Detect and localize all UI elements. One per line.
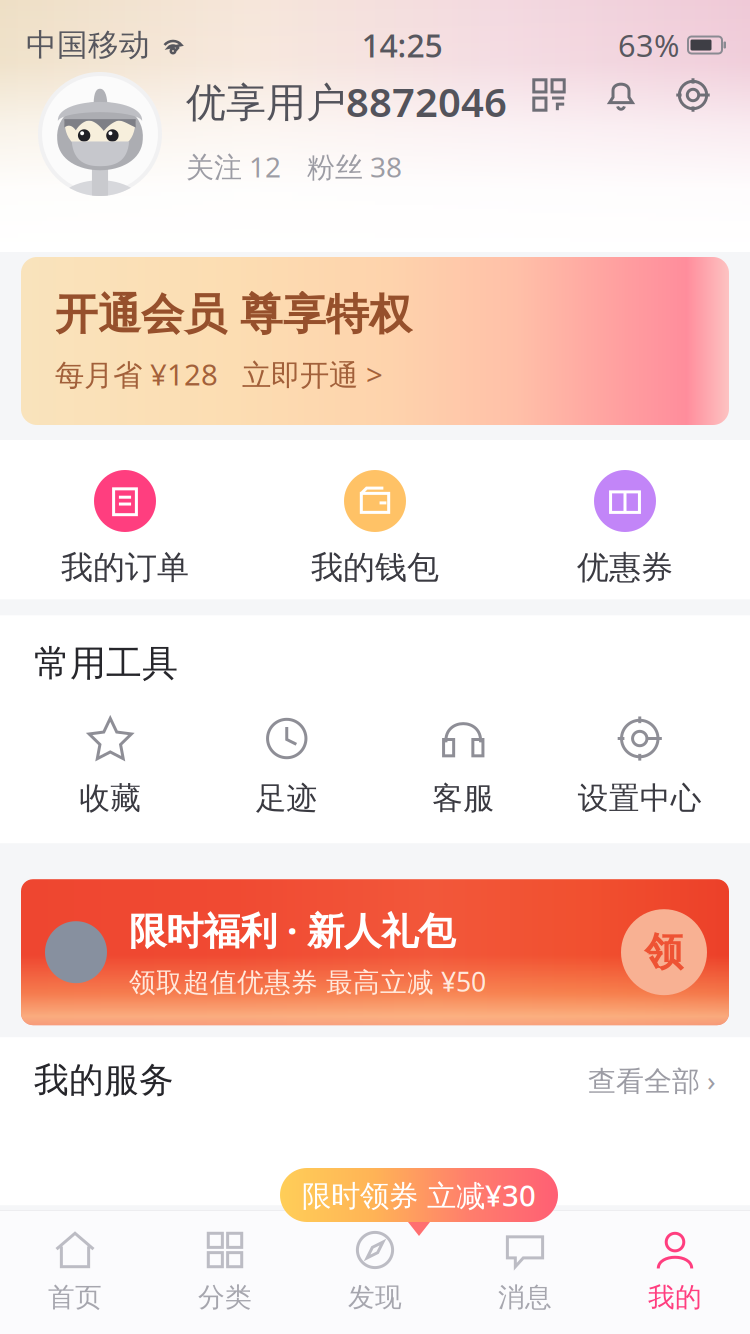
staticText: 查看全部 › bbox=[588, 1062, 716, 1099]
button[interactable]: 收藏 bbox=[22, 695, 198, 823]
button[interactable]: 消息通知 bbox=[602, 76, 640, 114]
staticText: 领 bbox=[644, 928, 683, 976]
staticText: 14:25 bbox=[361, 24, 442, 66]
button[interactable]: 消息 bbox=[450, 1227, 600, 1314]
staticText: 中国移动 bbox=[26, 26, 150, 64]
staticText: 每月省 ¥128 立即开通 > bbox=[55, 355, 383, 394]
button[interactable]: 我的钱包 bbox=[250, 440, 500, 599]
staticText: 客服 bbox=[432, 779, 494, 817]
button[interactable]: 分类 bbox=[150, 1227, 300, 1314]
staticText: 我的 bbox=[648, 1281, 702, 1314]
button[interactable]: 首页 bbox=[0, 1227, 150, 1314]
button[interactable]: 限时福利 · 新人礼包 bbox=[0, 843, 750, 1025]
button[interactable]: 限时领券 立减¥30 bbox=[280, 1168, 558, 1236]
staticText: 消息 bbox=[498, 1281, 552, 1314]
staticText: 常用工具 bbox=[34, 641, 178, 685]
staticText: 优享用户8872046 bbox=[186, 75, 507, 128]
button[interactable]: 头像 bbox=[38, 72, 162, 196]
staticText: 我的订单 bbox=[61, 548, 189, 587]
staticText: 我的服务 bbox=[34, 1059, 174, 1101]
button[interactable]: 足迹 bbox=[198, 695, 375, 823]
staticText: 设置中心 bbox=[578, 779, 702, 817]
button[interactable]: 我的服务 bbox=[0, 1037, 750, 1123]
button[interactable]: 扫一扫 bbox=[530, 76, 568, 114]
staticText: 粉丝 38 bbox=[307, 148, 402, 185]
staticText: 收藏 bbox=[79, 779, 141, 817]
staticText: 领取超值优惠券 最高立减 ¥50 bbox=[129, 964, 486, 999]
button[interactable]: 设置 bbox=[674, 76, 712, 114]
button[interactable]: 我的 bbox=[600, 1227, 750, 1314]
button[interactable]: 发现 bbox=[300, 1227, 450, 1314]
button[interactable]: 开通会员 尊享特权 bbox=[0, 252, 750, 425]
staticText: 足迹 bbox=[256, 779, 318, 817]
staticText: 63% bbox=[618, 25, 679, 65]
staticText: 分类 bbox=[198, 1281, 252, 1314]
staticText: 发现 bbox=[348, 1281, 402, 1314]
staticText: 优惠券 bbox=[577, 548, 673, 587]
staticText: 关注 12 bbox=[186, 148, 281, 185]
staticText: 限时领券 立减¥30 bbox=[302, 1175, 536, 1214]
staticText: 限时福利 · 新人礼包 bbox=[129, 905, 455, 955]
staticText: 我的钱包 bbox=[311, 548, 439, 587]
button[interactable]: 设置中心 bbox=[551, 695, 728, 823]
staticText: 开通会员 尊享特权 bbox=[55, 288, 412, 341]
button[interactable]: 我的订单 bbox=[0, 440, 250, 599]
staticText: 首页 bbox=[48, 1281, 102, 1314]
button[interactable]: 客服 bbox=[375, 695, 551, 823]
button[interactable]: 优惠券 bbox=[500, 440, 750, 599]
